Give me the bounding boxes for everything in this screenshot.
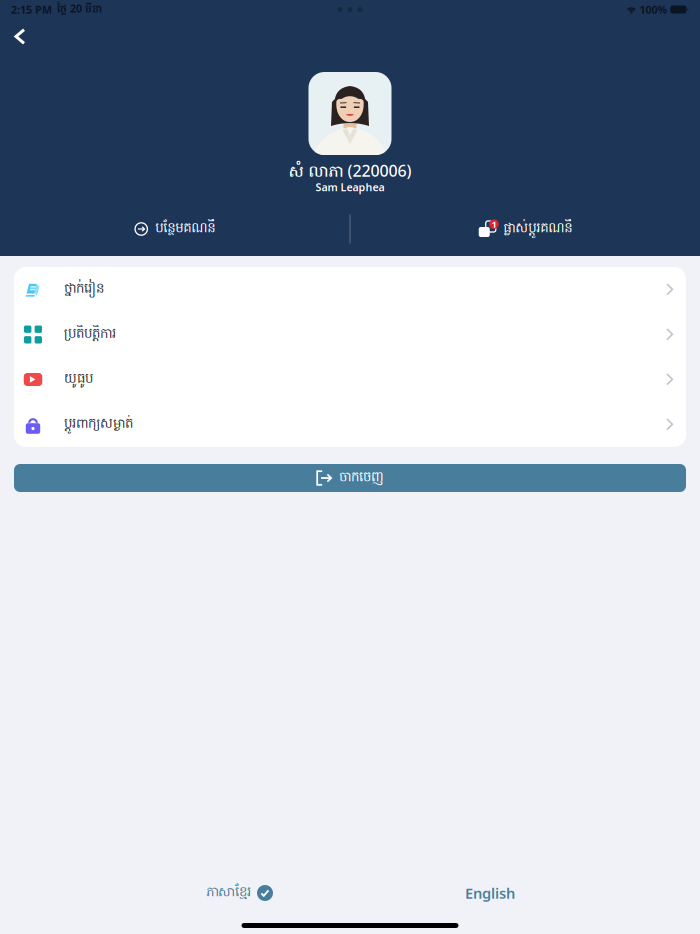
button[interactable]: យូធូប xyxy=(14,357,686,402)
staticText: ប្ដូរពាក្យសម្ងាត់ xyxy=(64,415,133,434)
button[interactable]: ចាកចេញ xyxy=(14,464,686,492)
staticText: ប្រតិបត្តិការ xyxy=(64,325,116,344)
staticText: សំ លាភា (220006) xyxy=(288,160,411,184)
staticText: ភាសាខ្មែរ xyxy=(206,883,251,902)
staticText: ថ្ងៃ 20 មីនា xyxy=(57,1,102,18)
staticText: 2:15 PM xyxy=(11,2,52,17)
staticText: ថ្នាក់រៀន xyxy=(64,280,104,299)
staticText: យូធូប xyxy=(64,370,93,389)
staticText: ផ្លាស់ប្ដូរគណនី xyxy=(503,219,572,238)
button[interactable]: 1 xyxy=(350,214,700,244)
staticText: ចាកចេញ xyxy=(339,468,384,487)
button[interactable]: ថ្នាក់រៀន xyxy=(14,267,686,312)
staticText: Sam Leaphea xyxy=(315,180,384,194)
button[interactable]: ប្រតិបត្តិការ xyxy=(14,312,686,357)
button[interactable]: ភាសាខ្មែរ xyxy=(206,877,273,908)
button[interactable]: ប្ដូរពាក្យសម្ងាត់ xyxy=(14,402,686,447)
button[interactable]: បន្ថែមគណនី xyxy=(0,214,349,244)
staticText: English xyxy=(465,883,515,903)
staticText: 100% xyxy=(639,2,667,17)
staticText: បន្ថែមគណនី xyxy=(155,219,215,238)
staticText: 1 xyxy=(491,218,496,230)
button[interactable]: Back xyxy=(0,20,40,53)
button[interactable]: English xyxy=(465,877,515,909)
